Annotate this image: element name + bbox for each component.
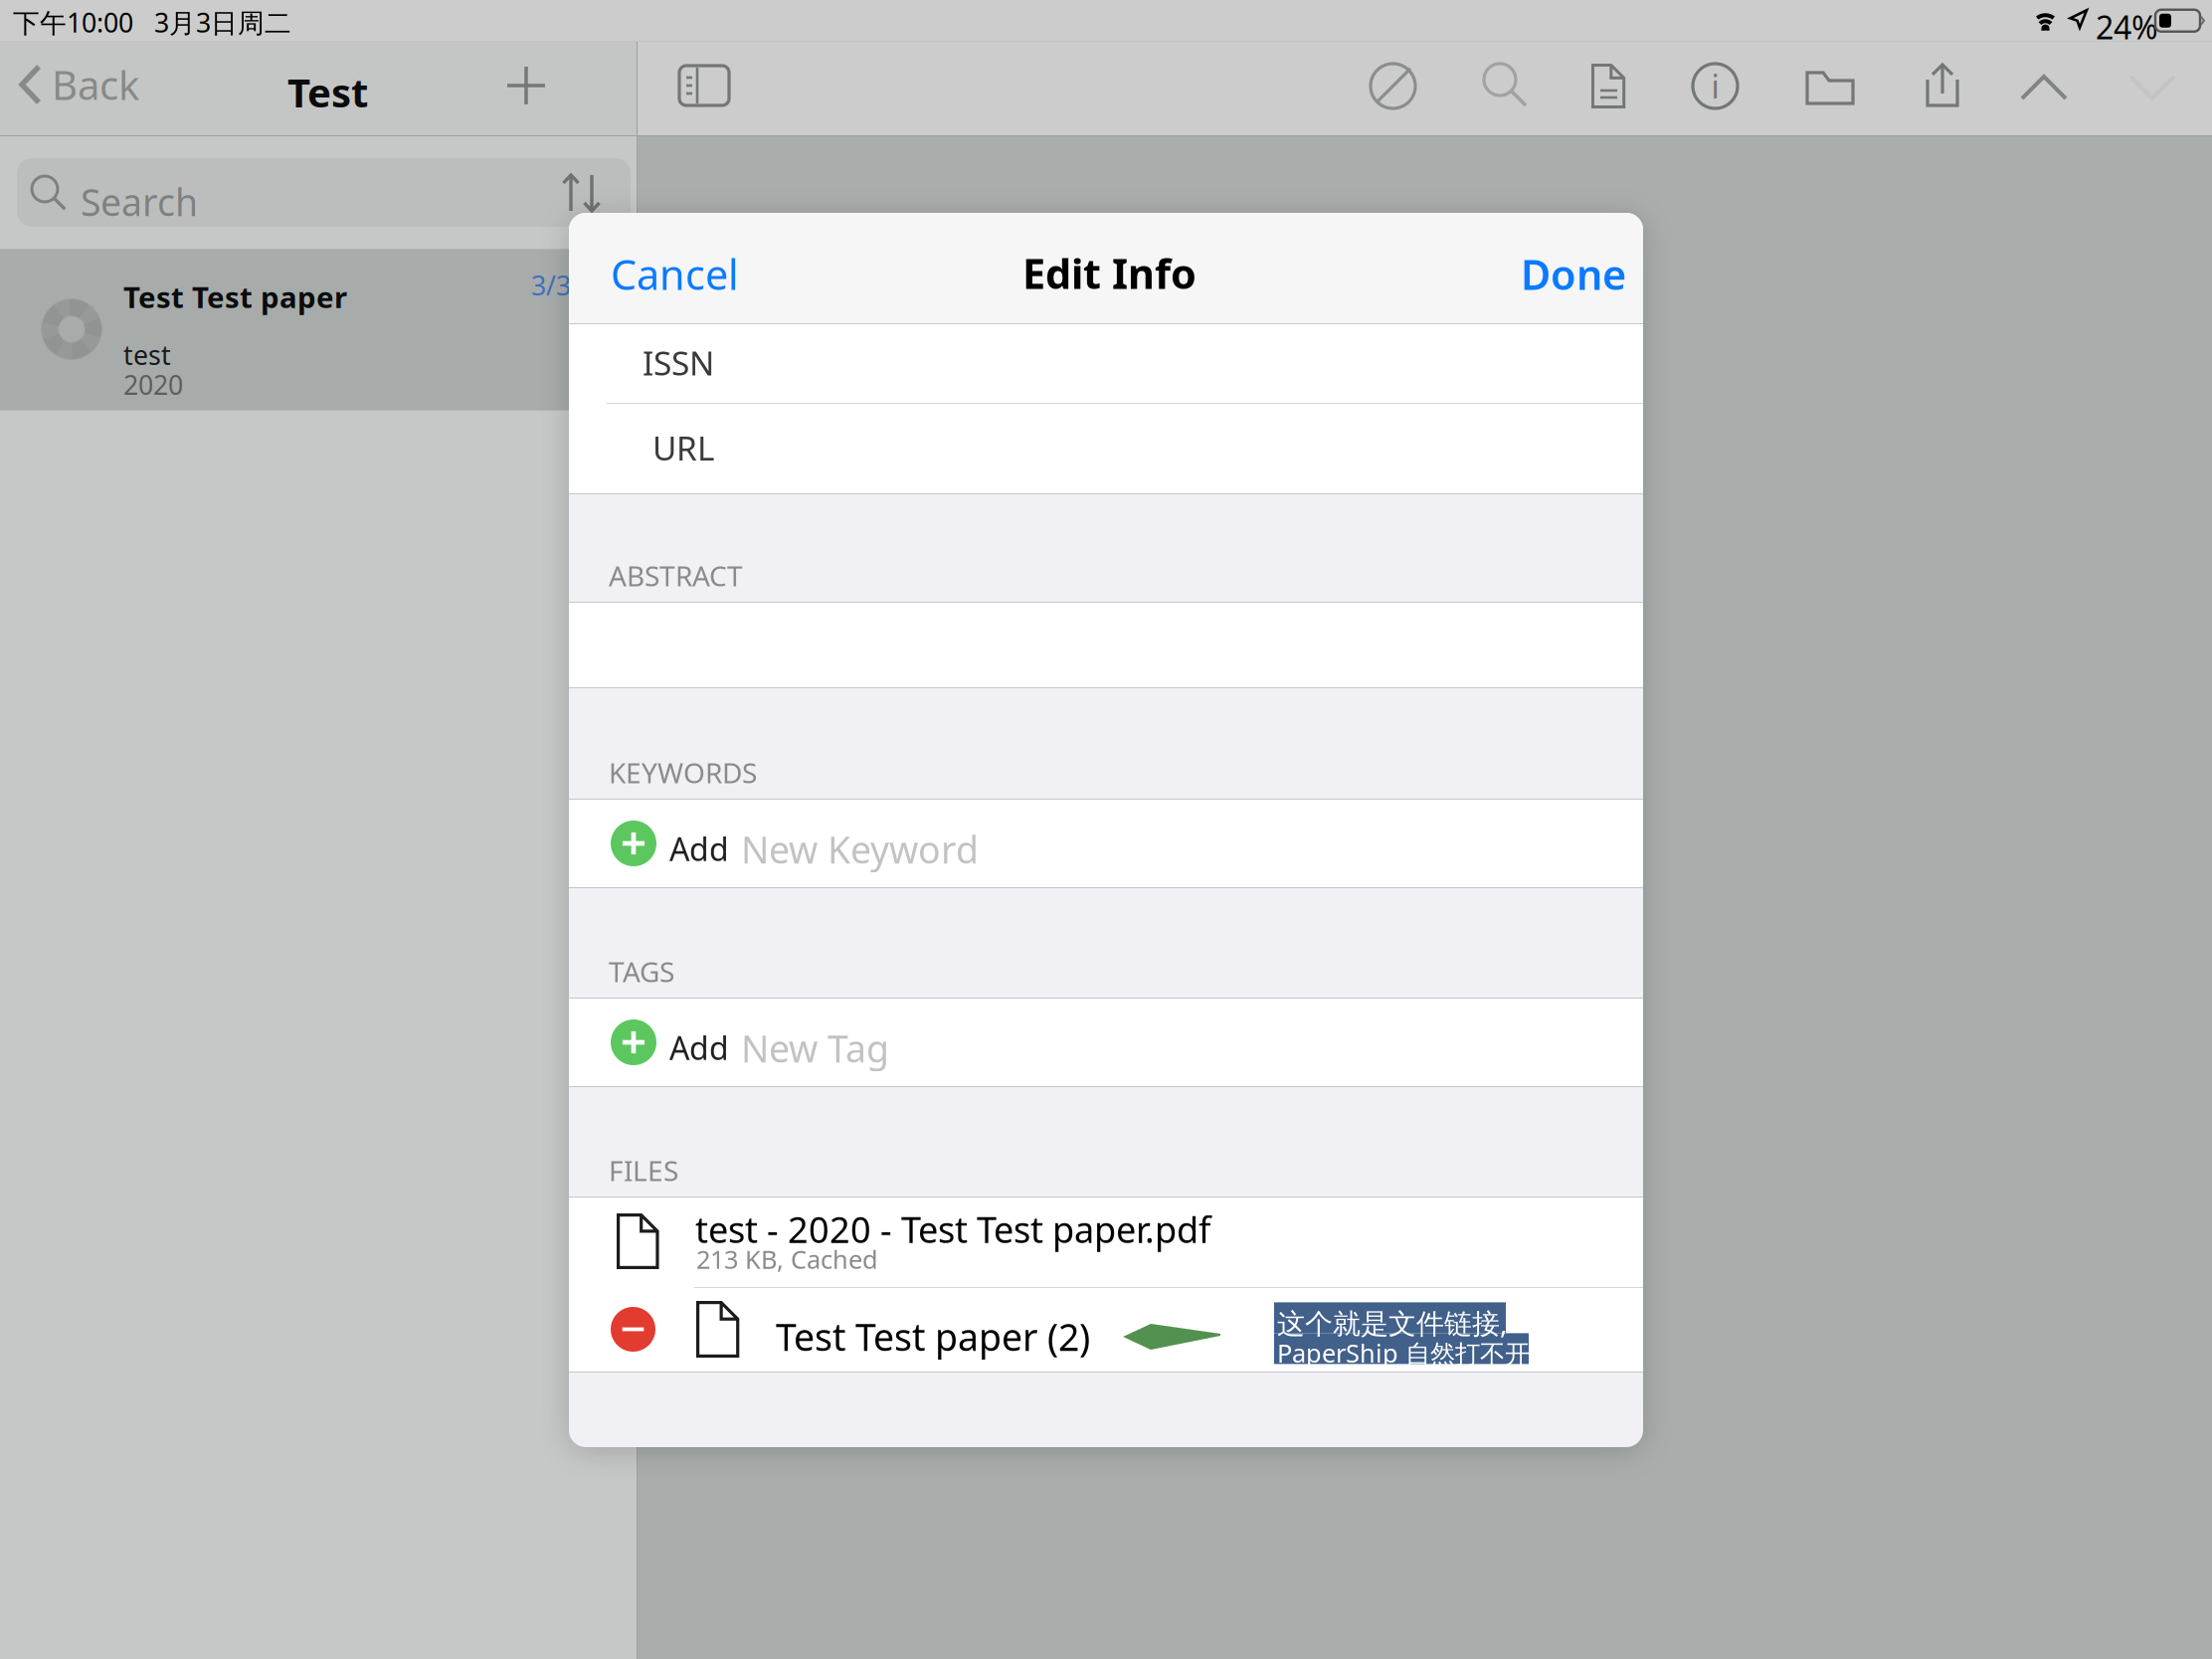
- button[interactable]: Add: [507, 67, 545, 104]
- button[interactable]: Add: [569, 800, 1643, 887]
- button[interactable]: Document: [1591, 64, 1626, 108]
- staticText: URL: [652, 426, 714, 470]
- staticText: New Tag: [741, 1023, 889, 1073]
- staticText: FILES: [609, 1152, 678, 1189]
- staticText: test - 2020 - Test Test paper.pdf: [695, 1205, 1210, 1253]
- staticText: 这个就是文件链接,: [1277, 1304, 1508, 1341]
- button[interactable]: Test Test paper: [0, 250, 637, 410]
- staticText: PaperShip 自然打不开: [1277, 1336, 1530, 1370]
- staticText: KEYWORDS: [609, 754, 757, 791]
- staticText: Cancel: [611, 247, 739, 301]
- button[interactable]: test - 2020 - Test Test paper.pdf: [569, 1198, 1643, 1287]
- staticText: New Keyword: [741, 825, 979, 874]
- button[interactable]: Next: [2128, 73, 2176, 102]
- button[interactable]: Previous: [2020, 73, 2068, 102]
- button[interactable]: Move to Folder: [1805, 66, 1855, 105]
- staticText: Add: [669, 1026, 729, 1069]
- staticText: 2020: [123, 367, 183, 402]
- staticText: Done: [1521, 247, 1626, 301]
- button[interactable]: Test Test paper (2): [569, 1288, 1643, 1372]
- staticText: TAGS: [609, 953, 674, 990]
- staticText: Test: [287, 66, 368, 118]
- staticText: Edit Info: [1022, 246, 1197, 300]
- button[interactable]: Search: [1484, 64, 1528, 107]
- staticText: ABSTRACT: [609, 557, 743, 594]
- staticText: test: [123, 337, 171, 372]
- staticText: 24%: [2096, 6, 2158, 48]
- button[interactable]: Share: [1922, 63, 1963, 108]
- button[interactable]: Annotate: [1371, 64, 1415, 108]
- staticText: ISSN: [643, 341, 714, 385]
- button[interactable]: Add: [569, 999, 1643, 1086]
- staticText: Back: [52, 58, 139, 111]
- staticText: 3/3: [531, 268, 571, 303]
- staticText: Search: [81, 177, 198, 226]
- staticText: 下午10:00 3月3日周二: [13, 5, 291, 40]
- button[interactable]: Toggle Sidebar: [679, 66, 729, 105]
- button[interactable]: Back: [18, 63, 139, 106]
- staticText: Test Test paper: [123, 277, 347, 316]
- staticText: 213 KB, Cached: [696, 1242, 878, 1276]
- button[interactable]: Done: [1513, 237, 1634, 311]
- button[interactable]: Cancel: [603, 237, 747, 311]
- staticText: Test Test paper (2): [776, 1312, 1090, 1361]
- button[interactable]: Info: [1693, 64, 1738, 108]
- staticText: Add: [669, 828, 729, 870]
- staticText: i: [1711, 65, 1719, 107]
